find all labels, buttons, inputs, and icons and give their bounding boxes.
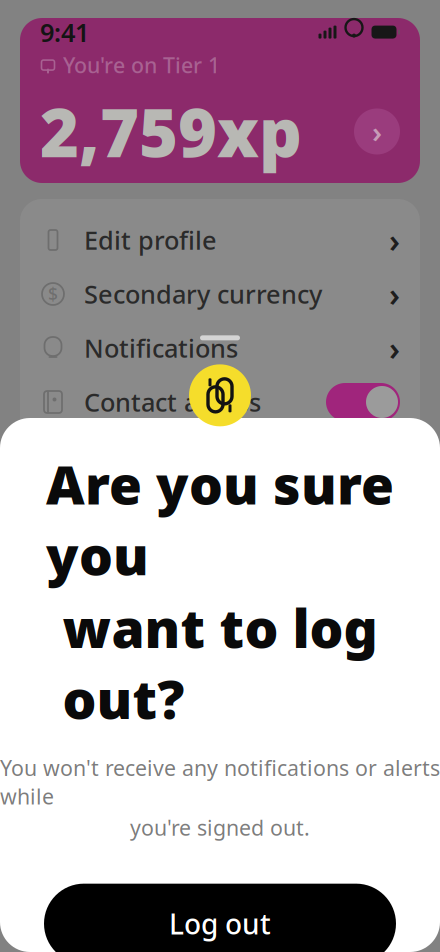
staticText: Secondary currency <box>84 277 322 311</box>
button[interactable]: $ <box>20 267 420 321</box>
staticText: 9:41 <box>40 15 89 49</box>
button[interactable]: Log out <box>44 884 396 952</box>
staticText: You're on Tier 1 <box>63 51 220 79</box>
button[interactable]: Edit profile <box>20 213 420 267</box>
staticText: want to log out? <box>62 592 377 734</box>
staticText: Notifications <box>84 331 238 365</box>
staticText: › <box>372 112 382 151</box>
button[interactable]: View tier details <box>354 108 400 154</box>
staticText: Are you sure you <box>46 448 394 590</box>
staticText: › <box>389 273 400 315</box>
staticText: 2,759xp <box>40 87 302 176</box>
staticText: Contact access <box>84 385 261 419</box>
button[interactable]: Notifications <box>20 321 420 375</box>
staticText: › <box>389 327 400 369</box>
button[interactable]: Contact access <box>20 375 420 429</box>
staticText: you're signed out. <box>130 813 310 842</box>
staticText: › <box>389 219 400 261</box>
staticText: You won't receive any notifications or a… <box>0 754 440 810</box>
staticText: Edit profile <box>84 223 217 257</box>
staticText: $ <box>48 282 58 305</box>
staticText: Log out <box>169 905 271 942</box>
